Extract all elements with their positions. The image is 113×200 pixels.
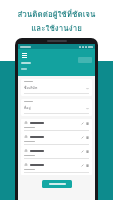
button[interactable]: Menu xyxy=(21,52,28,59)
button[interactable]: Delete xyxy=(86,164,89,167)
button[interactable]: Delete xyxy=(86,122,89,125)
button[interactable]: Edit xyxy=(24,135,89,145)
button[interactable]: ที่อยู่ xyxy=(24,101,89,114)
button[interactable]: Edit xyxy=(24,163,89,173)
button[interactable]: Edit xyxy=(24,149,89,159)
button[interactable]: Edit xyxy=(81,150,84,153)
button[interactable]: Edit xyxy=(24,121,89,131)
button[interactable]: ชื่อบริษัท xyxy=(24,81,89,94)
staticText: และใช้งานง่าย xyxy=(31,22,82,35)
staticText: ชื่อบริษัท xyxy=(24,85,38,91)
button[interactable] xyxy=(42,180,72,188)
staticText: ส่วนติดต่อผู้ใช้ที่ชัดเจน xyxy=(17,8,96,21)
other: Expand xyxy=(86,87,89,90)
button[interactable]: Edit xyxy=(81,164,84,167)
other: Expand xyxy=(86,107,89,110)
button[interactable]: Delete xyxy=(86,150,89,153)
button[interactable]: Edit xyxy=(81,122,84,125)
staticText: ที่อยู่ xyxy=(24,105,31,111)
button[interactable]: Edit xyxy=(81,136,84,139)
button[interactable]: Delete xyxy=(86,136,89,139)
